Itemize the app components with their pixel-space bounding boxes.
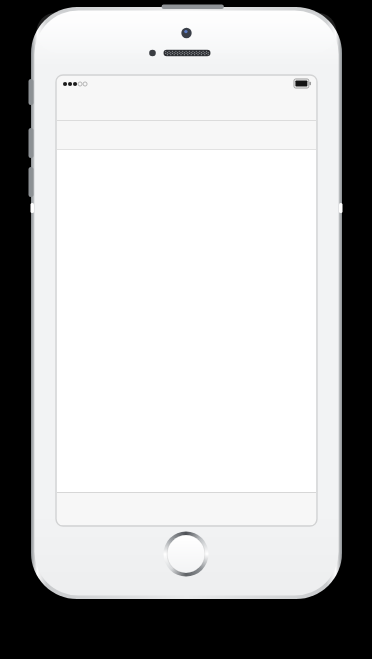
button[interactable]: Home bbox=[163, 531, 209, 577]
